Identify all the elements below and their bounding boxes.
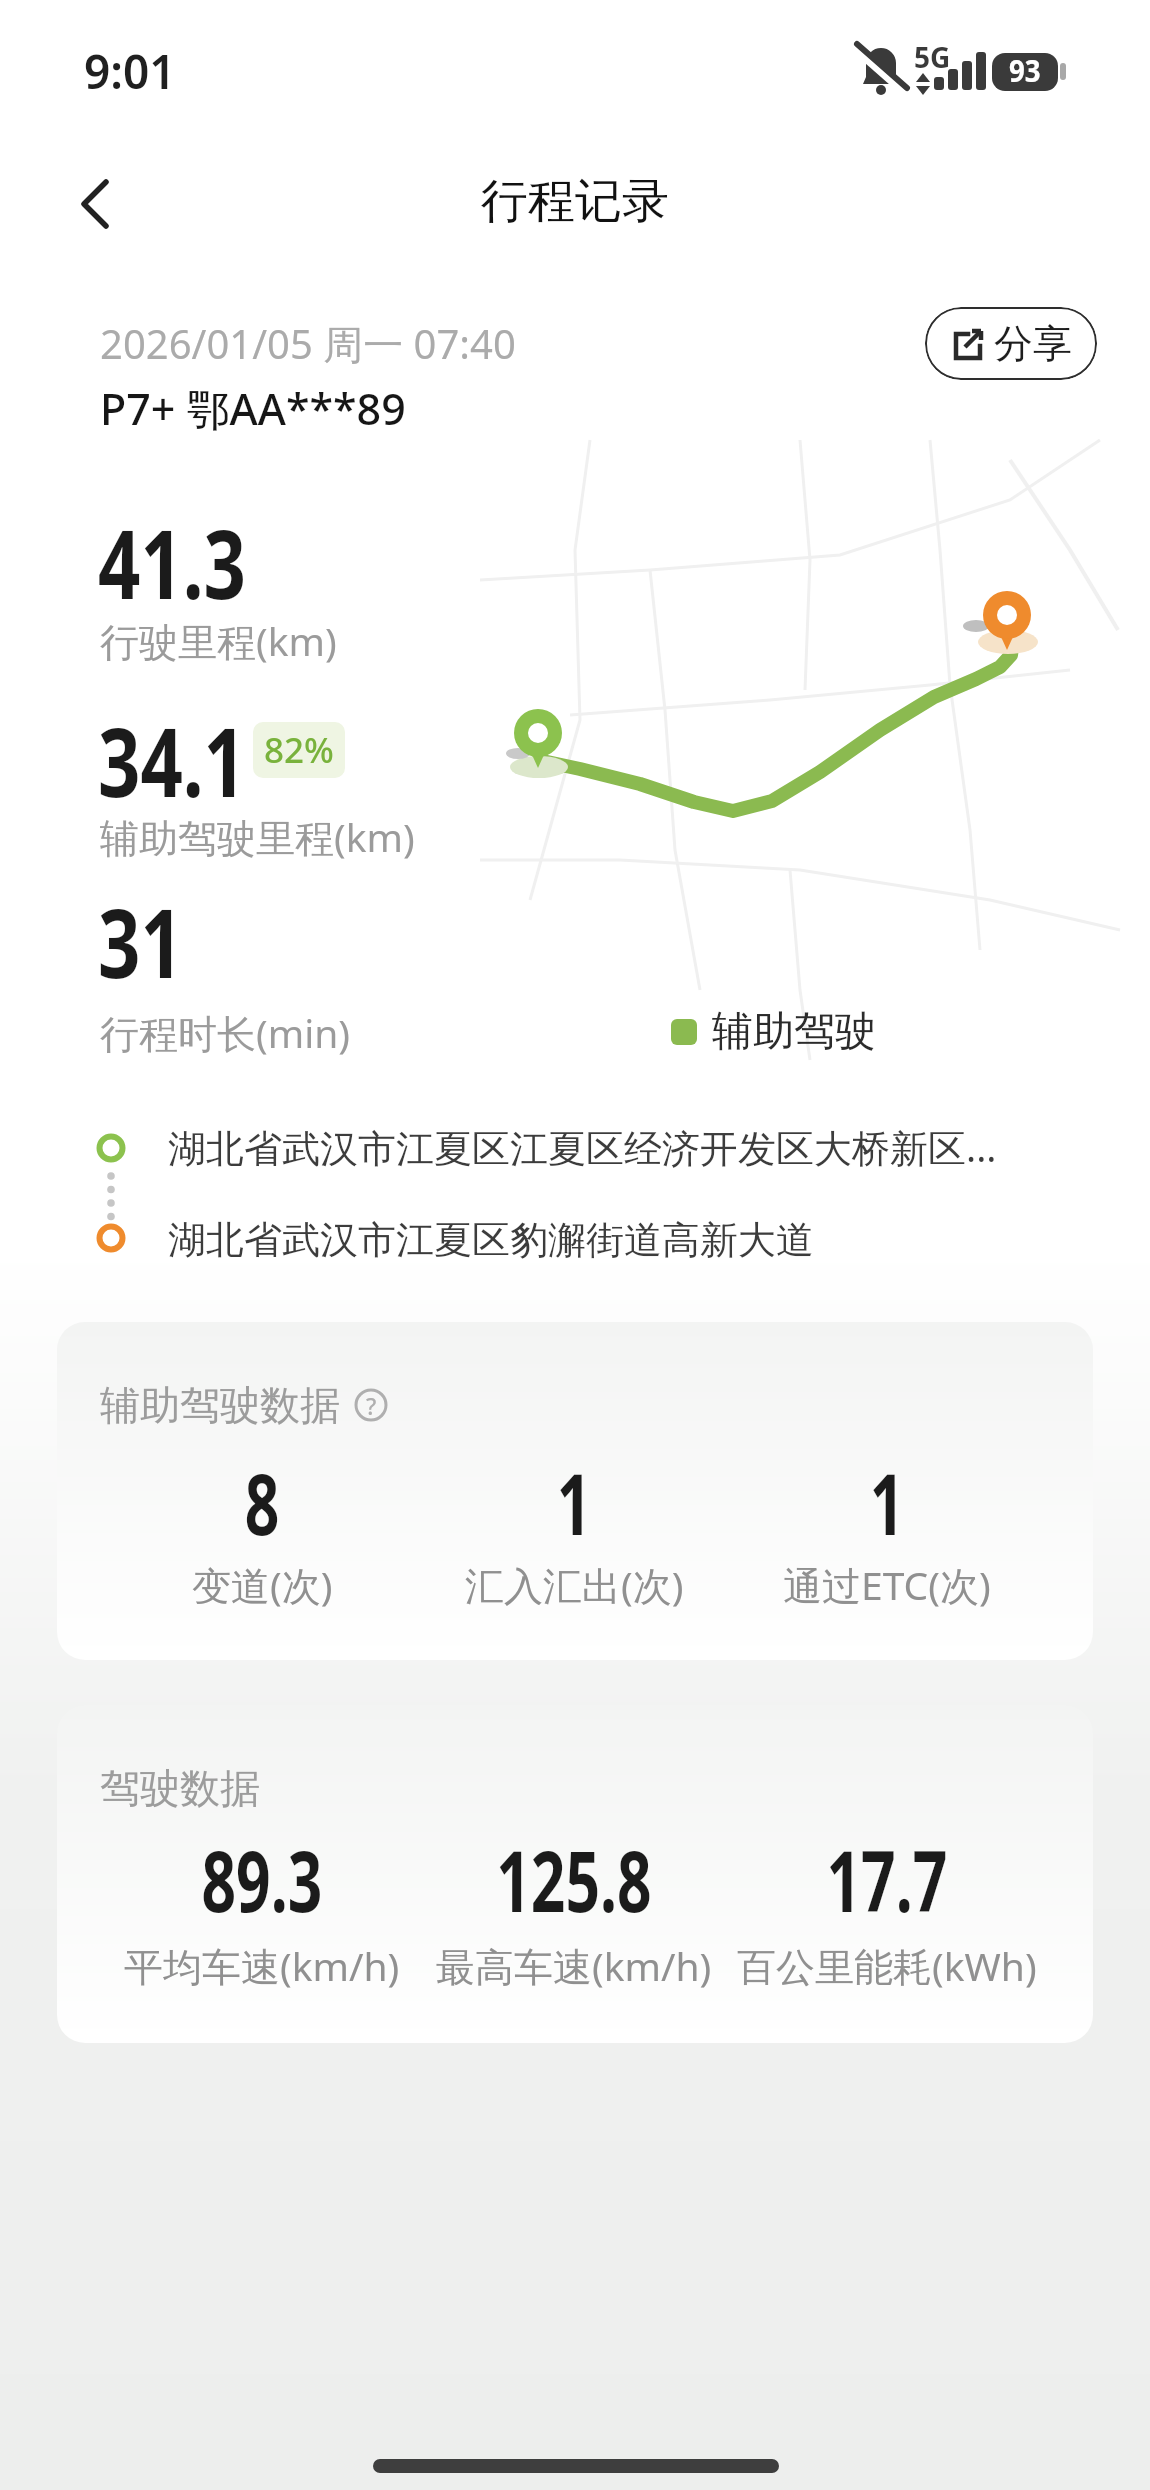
staticText: 31: [98, 876, 183, 1005]
staticText: ?: [366, 1390, 377, 1421]
staticText: 辅助驾驶: [712, 1006, 876, 1058]
staticText: 百公里能耗(kWh): [737, 1939, 1037, 1992]
staticText: 1: [870, 1445, 905, 1559]
staticText: 最高车速(km/h): [436, 1939, 712, 1992]
staticText: 分享: [994, 319, 1072, 368]
staticText: 2026/01/05 周一 07:40: [100, 316, 516, 371]
staticText: P7+ 鄂AA***89: [100, 379, 406, 438]
staticText: 93: [1009, 50, 1041, 91]
staticText: 1: [557, 1445, 592, 1559]
button[interactable]: 分享: [925, 307, 1097, 380]
staticText: 125.8: [496, 1822, 652, 1936]
staticText: 湖北省武汉市江夏区豹澥街道高新大道: [168, 1216, 814, 1264]
staticText: 辅助驾驶数据: [100, 1380, 340, 1430]
staticText: 行程时长(min): [100, 1006, 351, 1059]
staticText: 湖北省武汉市江夏区江夏区经济开发区大桥新区...: [168, 1121, 997, 1173]
staticText: 辅助驾驶里程(km): [100, 810, 415, 863]
staticText: 34.1: [98, 695, 246, 824]
button[interactable]: [72, 178, 124, 230]
staticText: 平均车速(km/h): [124, 1939, 400, 1992]
staticText: 8: [245, 1445, 280, 1559]
staticText: 41.3: [98, 497, 246, 626]
staticText: 行驶里程(km): [100, 614, 337, 667]
staticText: 89.3: [201, 1822, 322, 1936]
staticText: 82%: [264, 726, 334, 774]
button[interactable]: 辅助驾驶数据: [57, 1322, 1093, 1660]
staticText: 5G: [914, 38, 951, 76]
staticText: 9:01: [84, 40, 176, 103]
staticText: 汇入汇出(次): [465, 1558, 684, 1611]
staticText: 通过ETC(次): [783, 1558, 991, 1611]
staticText: 变道(次): [192, 1558, 333, 1611]
staticText: 17.7: [826, 1822, 947, 1936]
staticText: 驾驶数据: [100, 1763, 260, 1813]
button[interactable]: 驾驶数据: [57, 1705, 1093, 2043]
staticText: 行程记录: [481, 172, 669, 231]
